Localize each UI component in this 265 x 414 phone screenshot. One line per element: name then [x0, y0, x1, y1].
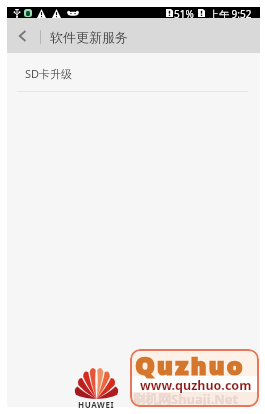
staticText: SD卡升级 [25, 66, 73, 81]
button[interactable]: SD卡升级 [7, 53, 260, 99]
staticText: 上午 9:52 [209, 7, 252, 18]
staticText: Quzhuo [135, 355, 245, 380]
staticText: 刷机网Shuaji.Net [132, 390, 239, 407]
staticText: HUAWEI [78, 399, 115, 410]
staticText: 51% [174, 7, 194, 18]
button[interactable]: Back [9, 19, 36, 53]
staticText: 软件更新服务 [50, 29, 128, 45]
staticText: www.quzhuo.com [140, 377, 252, 394]
